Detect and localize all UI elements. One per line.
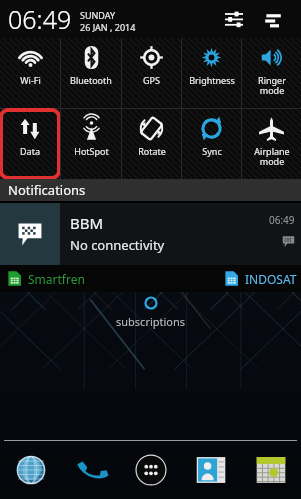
staticText: INDOSAT xyxy=(245,271,297,287)
staticText: Rotate xyxy=(138,145,166,157)
staticText: Ringer mode xyxy=(258,74,286,96)
staticText: Smartfren xyxy=(28,271,85,287)
staticText: Data xyxy=(20,145,40,157)
button[interactable]: Bluetooth xyxy=(61,38,121,108)
staticText: Sync xyxy=(202,145,222,157)
button[interactable]: Calendar xyxy=(241,441,301,499)
button[interactable]: Airplane mode xyxy=(242,109,301,179)
staticText: BBM xyxy=(70,213,104,233)
staticText: Notifications xyxy=(8,181,86,199)
button[interactable]: Apps xyxy=(121,441,181,499)
staticText: 06:49 xyxy=(8,2,72,36)
button[interactable]: Contacts xyxy=(181,441,241,499)
button[interactable]: Smartfren xyxy=(6,270,85,287)
button[interactable]: Settings xyxy=(217,2,251,36)
staticText: 06:49 xyxy=(269,213,295,227)
button[interactable]: Clear all notifications xyxy=(257,2,291,36)
button[interactable]: Sync xyxy=(182,109,241,179)
button[interactable]: Ringer mode xyxy=(242,38,301,108)
staticText: GPS xyxy=(143,74,160,86)
staticText: No connectivity xyxy=(70,236,165,254)
button[interactable]: Phone xyxy=(61,441,121,499)
staticText: Brightness xyxy=(189,74,235,86)
button[interactable]: INDOSAT xyxy=(223,270,297,287)
button[interactable]: Browser xyxy=(0,441,61,499)
button[interactable]: Rotate xyxy=(122,109,181,179)
staticText: Airplane mode xyxy=(254,145,290,167)
button[interactable]: BBM xyxy=(0,203,301,265)
button[interactable]: GPS xyxy=(122,38,181,108)
button[interactable]: Data xyxy=(0,109,60,179)
staticText: 26 JAN , 2014 xyxy=(80,21,136,33)
staticText: Wi-Fi xyxy=(20,74,41,86)
button[interactable]: Brightness xyxy=(182,38,241,108)
staticText: HotSpot xyxy=(74,145,109,157)
staticText: subscriptions xyxy=(116,314,186,329)
button[interactable]: subscriptions xyxy=(116,296,186,329)
staticText: SUNDAY xyxy=(80,9,116,21)
button[interactable]: Wi-Fi xyxy=(0,38,60,108)
staticText: Bluetooth xyxy=(70,74,112,86)
button[interactable]: HotSpot xyxy=(61,109,121,179)
